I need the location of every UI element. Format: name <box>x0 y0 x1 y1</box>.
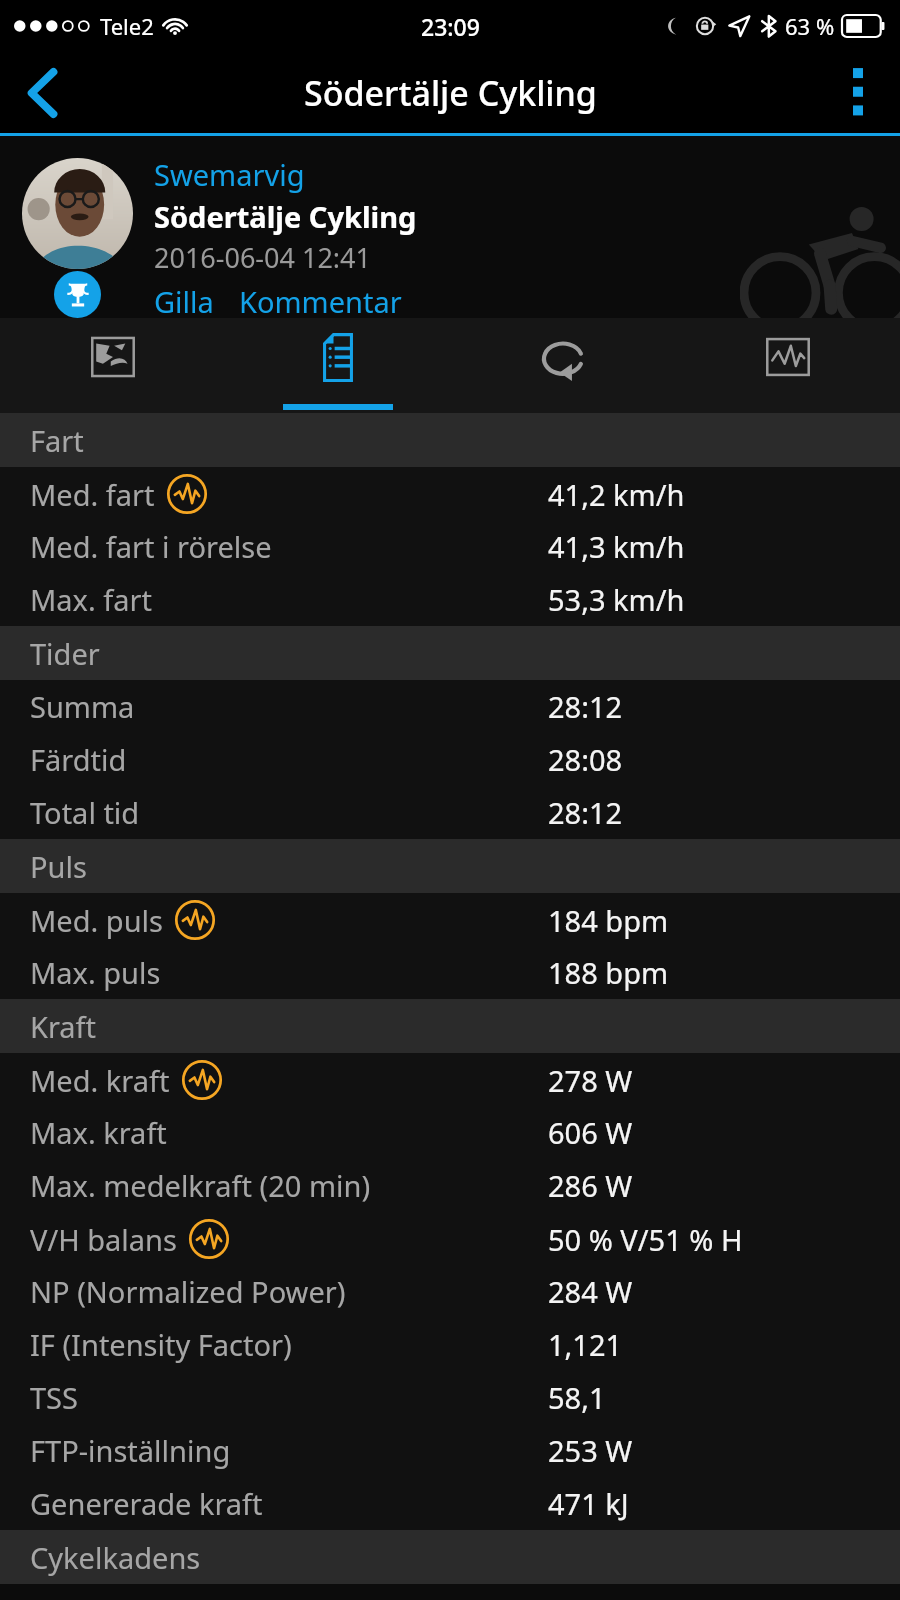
button[interactable]: Färdtid <box>0 733 900 786</box>
staticText: 58,1 <box>548 1378 606 1417</box>
staticText: 471 kJ <box>548 1484 629 1523</box>
button[interactable]: Max. kraft <box>0 1106 900 1159</box>
staticText: 188 bpm <box>548 953 669 992</box>
staticText: 23:09 <box>421 11 480 42</box>
staticText: 278 W <box>548 1061 633 1100</box>
staticText: 28:12 <box>548 793 623 832</box>
staticText: Max. fart <box>30 580 152 619</box>
staticText: Gilla <box>154 282 214 318</box>
staticText: Swemarvig <box>154 155 305 194</box>
staticText: FTP-inställning <box>30 1431 231 1470</box>
button[interactable]: Map tab <box>0 318 225 413</box>
staticText: IF (Intensity Factor) <box>30 1325 292 1364</box>
button[interactable]: Kommentar <box>239 282 402 318</box>
button[interactable]: Puls <box>0 839 900 893</box>
staticText: Södertälje Cykling <box>304 70 597 116</box>
button[interactable]: Max. medelkraft (20 min) <box>0 1159 900 1212</box>
button[interactable]: Graph tab <box>675 318 900 413</box>
staticText: Genererade kraft <box>30 1484 263 1523</box>
button[interactable]: Max. puls <box>0 946 900 999</box>
button[interactable]: TSS <box>0 1371 900 1424</box>
button[interactable]: Details tab <box>225 318 450 413</box>
staticText: 50 % V/51 % H <box>548 1220 743 1259</box>
staticText: 606 W <box>548 1113 633 1152</box>
staticText: Med. puls <box>30 901 163 940</box>
staticText: Puls <box>30 847 87 886</box>
button[interactable]: NP (Normalized Power) <box>0 1265 900 1318</box>
staticText: Tider <box>30 634 100 673</box>
button[interactable]: Max. fart <box>0 573 900 626</box>
button[interactable]: FTP-inställning <box>0 1424 900 1477</box>
button[interactable]: Trophy <box>54 271 101 318</box>
button[interactable]: Gilla <box>154 282 214 318</box>
staticText: 63 % <box>785 11 835 41</box>
staticText: Med. fart i rörelse <box>30 527 272 566</box>
button[interactable]: V/H balans <box>0 1212 900 1265</box>
staticText: 284 W <box>548 1272 633 1311</box>
staticText: 286 W <box>548 1166 633 1205</box>
staticText: 41,3 km/h <box>548 527 685 566</box>
staticText: Med. kraft <box>30 1061 170 1100</box>
button[interactable]: Summa <box>0 680 900 733</box>
button[interactable]: Med. puls <box>0 893 900 946</box>
staticText: Max. medelkraft (20 min) <box>30 1166 371 1205</box>
button[interactable]: Laps tab <box>450 318 675 413</box>
button[interactable]: Total tid <box>0 786 900 839</box>
staticText: Cykelkadens <box>30 1538 201 1577</box>
staticText: Kommentar <box>239 282 402 318</box>
button[interactable]: Tider <box>0 626 900 680</box>
button[interactable]: More options <box>816 52 900 133</box>
staticText: Max. kraft <box>30 1113 167 1152</box>
staticText: Färdtid <box>30 740 127 779</box>
staticText: 1,121 <box>548 1325 623 1364</box>
button[interactable]: Genererade kraft <box>0 1477 900 1530</box>
button[interactable]: Cykelkadens <box>0 1530 900 1584</box>
button[interactable]: IF (Intensity Factor) <box>0 1318 900 1371</box>
staticText: NP (Normalized Power) <box>30 1272 346 1311</box>
button[interactable]: Fart <box>0 413 900 467</box>
button[interactable]: Med. fart i rörelse <box>0 520 900 573</box>
staticText: Med. fart <box>30 475 155 514</box>
staticText: Fart <box>30 421 84 460</box>
staticText: 253 W <box>548 1431 633 1470</box>
staticText: TSS <box>30 1378 78 1417</box>
button[interactable]: Kraft <box>0 999 900 1053</box>
staticText: 2016-06-04 12:41 <box>154 239 371 276</box>
staticText: 53,3 km/h <box>548 580 685 619</box>
staticText: Tele2 <box>100 11 154 41</box>
button[interactable]: Back <box>0 52 86 133</box>
staticText: Kraft <box>30 1007 97 1046</box>
staticText: 41,2 km/h <box>548 475 685 514</box>
staticText: 28:12 <box>548 687 623 726</box>
staticText: Summa <box>30 687 135 726</box>
staticText: Total tid <box>30 793 140 832</box>
button[interactable]: Med. fart <box>0 467 900 520</box>
button[interactable]: Swemarvig <box>154 155 305 194</box>
button[interactable]: Med. kraft <box>0 1053 900 1106</box>
staticText: Södertälje Cykling <box>154 197 417 236</box>
staticText: 184 bpm <box>548 901 669 940</box>
staticText: 28:08 <box>548 740 623 779</box>
staticText: Max. puls <box>30 953 161 992</box>
staticText: V/H balans <box>30 1220 177 1259</box>
